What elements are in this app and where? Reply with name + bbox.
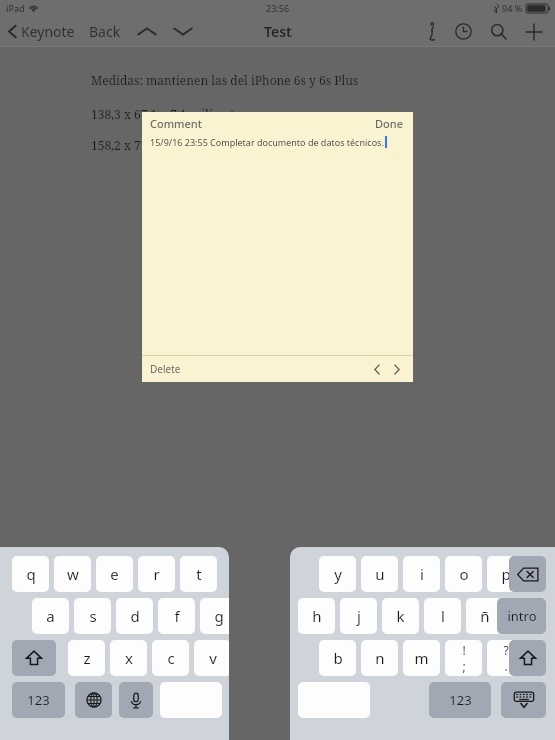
staticText: y xyxy=(334,564,342,584)
staticText: d xyxy=(130,606,140,626)
button[interactable]: Format xyxy=(418,18,446,45)
button[interactable]: Change keyboard xyxy=(75,682,112,718)
staticText: i xyxy=(420,564,424,584)
staticText: b xyxy=(333,648,343,668)
button[interactable]: p xyxy=(487,556,524,592)
button[interactable]: Keynote xyxy=(0,18,81,45)
staticText: h xyxy=(312,606,322,626)
button[interactable]: a xyxy=(32,598,69,634)
staticText: z xyxy=(83,648,91,668)
button[interactable]: Previous comment xyxy=(367,360,387,379)
button[interactable]: w xyxy=(54,556,91,592)
button[interactable]: t xyxy=(180,556,217,592)
staticText: Medidas: mantienen las del iPhone 6s y 6… xyxy=(91,72,359,88)
button[interactable]: k xyxy=(382,598,419,634)
button[interactable]: Next comment xyxy=(387,360,407,379)
staticText: k xyxy=(396,606,405,626)
staticText: e xyxy=(110,564,119,584)
button[interactable]: Previous xyxy=(129,22,165,41)
button[interactable]: Hide keyboard xyxy=(501,682,546,718)
button[interactable]: l xyxy=(424,598,461,634)
button[interactable]: ! ; xyxy=(445,640,482,676)
staticText: c xyxy=(167,648,175,668)
button[interactable]: intro xyxy=(497,598,546,634)
button[interactable]: f xyxy=(158,598,195,634)
button[interactable]: g xyxy=(200,598,229,634)
button[interactable]: e xyxy=(96,556,133,592)
staticText: Done xyxy=(375,116,403,131)
staticText: l xyxy=(441,606,445,626)
staticText: 138,3 x 67,1 x 7,1 milímetros xyxy=(91,106,253,122)
button[interactable]: b xyxy=(319,640,356,676)
button[interactable]: s xyxy=(74,598,111,634)
button[interactable]: i xyxy=(403,556,440,592)
staticText: a xyxy=(46,606,55,626)
button[interactable]: Add xyxy=(516,19,547,45)
staticText: m xyxy=(414,648,429,668)
staticText: o xyxy=(459,564,469,584)
button[interactable]: j xyxy=(340,598,377,634)
staticText: Back xyxy=(89,22,121,41)
staticText: Test xyxy=(264,22,292,41)
staticText: v xyxy=(209,648,217,668)
button[interactable]: ñ xyxy=(466,598,503,634)
button[interactable]: Back xyxy=(81,18,129,45)
staticText: x xyxy=(125,648,133,668)
staticText: q xyxy=(26,564,36,584)
staticText: s xyxy=(89,606,97,626)
button[interactable]: Search xyxy=(481,19,516,44)
staticText: 123 xyxy=(27,691,50,709)
button[interactable]: h xyxy=(298,598,335,634)
staticText: t xyxy=(196,564,202,584)
button[interactable]: Space xyxy=(298,682,370,718)
staticText: iPad xyxy=(6,2,25,14)
button[interactable]: o xyxy=(445,556,482,592)
button[interactable]: x xyxy=(110,640,147,676)
button[interactable]: y xyxy=(319,556,356,592)
button[interactable]: Dictate xyxy=(119,682,153,718)
staticText: 123 xyxy=(449,691,472,709)
button[interactable]: v xyxy=(194,640,229,676)
staticText: ñ xyxy=(480,606,490,626)
button[interactable]: m xyxy=(403,640,440,676)
staticText: 15/9/16 23:55 Completar documento de dat… xyxy=(150,136,384,148)
button[interactable]: ? . xyxy=(487,640,524,676)
staticText: r xyxy=(153,564,160,584)
button[interactable]: z xyxy=(68,640,105,676)
staticText: u xyxy=(375,564,385,584)
staticText: Delete xyxy=(150,362,181,376)
button[interactable]: d xyxy=(116,598,153,634)
button[interactable]: Shift xyxy=(509,640,546,676)
staticText: j xyxy=(357,606,361,626)
staticText: g xyxy=(214,606,224,626)
button[interactable]: 123 xyxy=(12,682,65,718)
staticText: w xyxy=(67,564,79,584)
button[interactable]: c xyxy=(152,640,189,676)
staticText: Keynote xyxy=(21,22,75,41)
button[interactable]: Done xyxy=(365,113,413,134)
button[interactable]: Backspace xyxy=(509,556,546,592)
button[interactable]: r xyxy=(138,556,175,592)
button[interactable]: u xyxy=(361,556,398,592)
staticText: 94 % xyxy=(502,2,523,14)
button[interactable]: Shift xyxy=(12,640,56,676)
staticText: intro xyxy=(507,607,537,625)
button[interactable]: Next xyxy=(165,22,201,41)
staticText: 23:56 xyxy=(266,2,290,14)
button[interactable]: q xyxy=(12,556,49,592)
staticText: f xyxy=(174,606,180,626)
button[interactable]: n xyxy=(361,640,398,676)
staticText: p xyxy=(501,564,511,584)
staticText: ? . xyxy=(503,642,509,674)
button[interactable]: History xyxy=(446,19,481,44)
button[interactable]: 123 xyxy=(429,682,491,718)
button[interactable]: Space xyxy=(160,682,222,718)
staticText: n xyxy=(375,648,385,668)
staticText: 158,2 x 77,9 x 7,3 milímetros xyxy=(91,137,253,153)
staticText: ! ; xyxy=(462,642,466,674)
button[interactable]: Delete xyxy=(142,358,189,380)
staticText: Comment xyxy=(150,116,202,131)
